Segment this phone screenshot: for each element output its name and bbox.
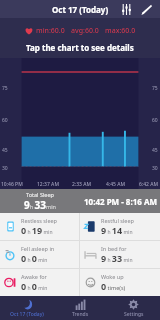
staticText: Settings — [124, 311, 144, 318]
staticText: 9 h 14 min — [101, 224, 133, 236]
button[interactable]: Filter — [118, 1, 134, 17]
button[interactable]: Awake for — [0, 269, 79, 296]
staticText: 60 — [2, 117, 8, 124]
staticText: max:60.0 — [105, 26, 136, 36]
staticText: Fell asleep in — [21, 245, 55, 252]
staticText: 12:37 AM — [37, 181, 59, 188]
staticText: 0 h 0 min — [21, 280, 48, 292]
staticText: Trends — [72, 311, 89, 318]
staticText: Oct 17 (Today) — [52, 4, 109, 15]
staticText: Tap the chart to see details — [26, 42, 134, 53]
staticText: 9h 33min — [24, 198, 56, 212]
staticText: 60 — [152, 117, 158, 124]
staticText: 9 h 33 min — [101, 252, 133, 264]
staticText: Awake for — [21, 273, 47, 280]
staticText: 0 h 19 min — [21, 224, 53, 236]
button[interactable]: Oct 17 (Today) — [50, 4, 111, 15]
staticText: 10:42 PM - 8:16 AM — [84, 196, 157, 207]
staticText: Restful sleep — [101, 217, 134, 224]
button[interactable]: 75 — [0, 58, 160, 189]
staticText: 2:33 AM — [72, 181, 92, 188]
staticText: Woke up — [101, 273, 124, 280]
staticText: avg:60.0 — [71, 26, 99, 36]
button[interactable]: Restful sleep — [80, 213, 160, 240]
staticText: 75 — [152, 85, 158, 92]
staticText: 75 — [2, 85, 8, 92]
button[interactable]: Trends — [54, 296, 107, 320]
staticText: 6:42 AM — [139, 181, 159, 188]
button[interactable]: Fell asleep in — [0, 241, 79, 268]
staticText: In bed for — [101, 245, 127, 252]
button[interactable]: Restless sleep — [0, 213, 79, 240]
button[interactable]: Edit — [138, 1, 154, 17]
staticText: Oct 17 (Today) — [10, 311, 44, 318]
button[interactable]: Oct 17 (Today) — [0, 296, 54, 320]
button[interactable]: Settings — [107, 296, 160, 320]
staticText: Total Sleep — [26, 191, 54, 198]
staticText: 0 time(s) — [101, 280, 126, 292]
staticText: 45 — [152, 147, 158, 154]
staticText: 0 h 0 min — [21, 252, 48, 264]
staticText: 45 — [2, 147, 8, 154]
staticText: 30 — [2, 165, 8, 172]
staticText: min:60.0 — [36, 26, 65, 36]
button[interactable]: In bed for — [80, 241, 160, 268]
staticText: Restless sleep — [21, 217, 58, 224]
staticText: 10:46 PM — [1, 181, 23, 188]
staticText: 4:45 AM — [106, 181, 126, 188]
staticText: 30 — [152, 165, 158, 172]
button[interactable]: Woke up — [80, 269, 160, 296]
